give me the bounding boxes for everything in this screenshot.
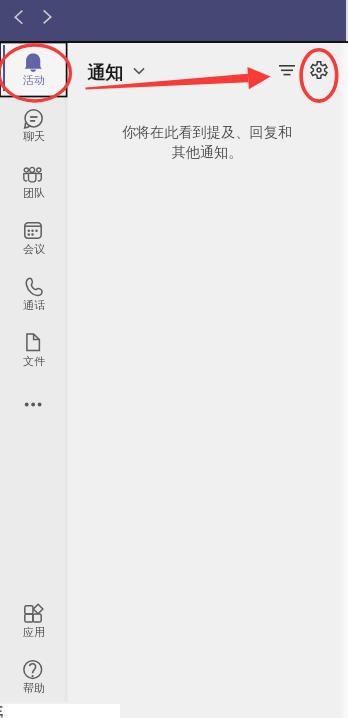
button[interactable]: Notification filter dropdown [129,61,149,81]
button[interactable]: Forward [35,5,59,29]
button[interactable] [0,104,68,148]
staticText: 你将在此看到提及、回复和其他通知。 [118,123,296,161]
button[interactable]: More [20,394,47,415]
staticText: 通知 [87,62,123,85]
staticText: 活动 [23,73,45,87]
staticText: 帮助 [23,681,45,695]
button[interactable] [0,217,68,261]
button[interactable] [0,655,68,699]
button[interactable] [0,272,68,316]
staticText: 会议 [23,242,45,256]
staticText: 通话 [23,298,45,312]
button[interactable]: Settings [309,60,329,80]
button[interactable] [0,48,68,92]
button[interactable]: 通知 [80,58,130,88]
button[interactable]: Back [6,5,30,29]
staticText: 聊天 [23,129,45,143]
button[interactable] [0,599,68,643]
button[interactable] [0,328,68,372]
staticText: 文件 [23,354,45,368]
button[interactable]: Filter [277,60,297,80]
staticText: 团队 [23,186,45,200]
button[interactable] [0,43,68,97]
staticText: 应用 [23,625,45,639]
button[interactable] [0,162,68,206]
